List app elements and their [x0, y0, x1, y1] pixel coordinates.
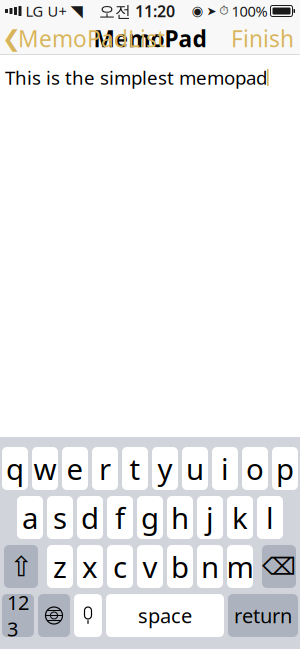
staticText: MemoPad — [93, 23, 206, 53]
staticText: ◥ — [70, 2, 82, 20]
staticText: ◉ — [191, 3, 203, 18]
button[interactable]: Finish — [231, 17, 294, 59]
button[interactable]: v — [137, 545, 163, 588]
staticText: ➤ — [206, 4, 216, 18]
staticText: ❮ — [2, 26, 21, 51]
button[interactable]: o — [242, 447, 268, 490]
staticText: return — [234, 602, 292, 629]
staticText: b — [171, 547, 189, 586]
button[interactable]: i — [212, 447, 238, 490]
button[interactable]: Dictation — [74, 594, 102, 637]
staticText: x — [82, 547, 98, 586]
button[interactable]: z — [47, 545, 73, 588]
staticText: 100% — [231, 1, 267, 21]
button[interactable]: f — [107, 496, 133, 539]
staticText: r — [99, 449, 111, 488]
staticText: h — [171, 498, 189, 537]
staticText: i — [221, 449, 229, 488]
staticText: MemoPadList — [18, 23, 165, 53]
button[interactable]: e — [62, 447, 88, 490]
button[interactable]: w — [32, 447, 58, 490]
staticText: a — [22, 498, 38, 537]
staticText: q — [6, 449, 24, 488]
button[interactable]: c — [107, 545, 133, 588]
staticText: v — [142, 547, 157, 586]
staticText: n — [201, 547, 219, 586]
staticText: d — [81, 498, 99, 537]
staticText: c — [113, 547, 127, 586]
button[interactable]: ❮ — [6, 17, 165, 59]
button[interactable]: Numbers — [2, 594, 34, 637]
staticText: g — [141, 498, 159, 537]
button[interactable]: space — [106, 594, 224, 637]
staticText: e — [66, 449, 83, 488]
staticText: m — [226, 547, 253, 586]
button[interactable]: a — [17, 496, 43, 539]
button[interactable]: m — [227, 545, 253, 588]
button[interactable]: Shift — [4, 545, 38, 588]
button[interactable]: Delete — [262, 545, 296, 588]
staticText: 123 — [7, 589, 29, 642]
staticText: ⇧ — [9, 551, 32, 582]
button[interactable]: u — [182, 447, 208, 490]
button[interactable]: q — [2, 447, 28, 490]
button[interactable]: j — [197, 496, 223, 539]
staticText: w — [33, 449, 56, 488]
button[interactable]: d — [77, 496, 103, 539]
staticText: z — [53, 547, 67, 586]
button[interactable]: b — [167, 545, 193, 588]
button[interactable]: x — [77, 545, 103, 588]
button[interactable]: r — [92, 447, 118, 490]
staticText: o — [246, 449, 264, 488]
button[interactable]: g — [137, 496, 163, 539]
button[interactable]: h — [167, 496, 193, 539]
staticText: 오전 11:20 — [99, 0, 175, 22]
staticText: space — [138, 602, 192, 629]
button[interactable]: y — [152, 447, 178, 490]
button[interactable]: l — [257, 496, 283, 539]
staticText: p — [276, 449, 294, 488]
staticText: l — [266, 498, 274, 537]
staticText: Finish — [231, 23, 294, 53]
staticText: j — [206, 498, 214, 537]
staticText: k — [232, 498, 248, 537]
staticText: This is the simplest memopad — [5, 65, 267, 90]
staticText: LG U+ — [25, 1, 66, 21]
staticText: u — [186, 449, 204, 488]
staticText: ⏱ — [219, 5, 228, 17]
button[interactable]: Next keyboard — [38, 594, 70, 637]
button[interactable]: s — [47, 496, 73, 539]
staticText: s — [53, 498, 67, 537]
staticText: f — [115, 498, 125, 537]
button[interactable]: n — [197, 545, 223, 588]
staticText: ⌫ — [262, 553, 296, 580]
button[interactable]: k — [227, 496, 253, 539]
button[interactable]: p — [272, 447, 298, 490]
button[interactable]: t — [122, 447, 148, 490]
staticText: t — [129, 449, 140, 488]
button[interactable]: return — [228, 594, 298, 637]
staticText: y — [157, 449, 172, 488]
